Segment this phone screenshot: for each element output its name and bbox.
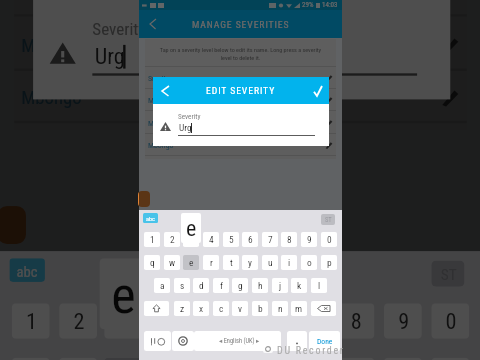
button[interactable]: 1 xyxy=(12,303,50,339)
button[interactable]: Major xyxy=(145,89,336,111)
button[interactable]: abc xyxy=(9,258,45,282)
staticText: 2 xyxy=(170,234,175,245)
button[interactable]: o xyxy=(301,255,317,270)
button[interactable]: t xyxy=(223,255,239,270)
staticText: s xyxy=(180,280,185,291)
button[interactable]: 9 xyxy=(301,232,317,247)
button[interactable]: a xyxy=(154,278,170,293)
button[interactable]: Major xyxy=(14,0,467,16)
staticText: Urg xyxy=(179,122,192,133)
button[interactable]: 4 xyxy=(203,232,219,247)
button[interactable]: Navigate up xyxy=(145,16,161,32)
staticText: Tap on a severity level below to edit it… xyxy=(154,46,327,61)
staticText: e xyxy=(186,216,197,242)
button[interactable]: r xyxy=(203,255,219,270)
button[interactable]: 3 xyxy=(183,232,199,247)
button[interactable]: y xyxy=(242,255,258,270)
staticText: 3 xyxy=(189,234,194,245)
button[interactable]: Mbongo xyxy=(145,134,336,156)
button[interactable]: Back xyxy=(157,82,174,99)
staticText: 8 xyxy=(351,308,363,334)
button[interactable]: x xyxy=(193,301,209,316)
button[interactable]: e xyxy=(104,358,142,360)
button[interactable]: 5 xyxy=(199,303,237,339)
staticText: 14:03 xyxy=(322,1,338,9)
button[interactable]: u xyxy=(262,255,278,270)
staticText: Small xyxy=(148,74,166,83)
button[interactable]: Save xyxy=(309,82,326,99)
button[interactable]: 0 xyxy=(321,232,337,247)
button[interactable]: w xyxy=(164,255,180,270)
button[interactable]: s xyxy=(174,278,190,293)
button[interactable]: Massive xyxy=(145,112,336,134)
button[interactable]: i xyxy=(281,255,297,270)
button[interactable]: Backspace xyxy=(311,301,336,316)
button[interactable]: p xyxy=(321,255,337,270)
button[interactable]: Add severity xyxy=(0,206,26,244)
staticText: x xyxy=(199,303,204,314)
button[interactable]: 2 xyxy=(164,232,180,247)
button[interactable]: q xyxy=(144,255,160,270)
button[interactable]: Clipboard xyxy=(321,214,335,225)
button[interactable]: 8 xyxy=(336,303,374,339)
staticText: Massive xyxy=(21,35,83,57)
button[interactable]: 1 xyxy=(144,232,160,247)
button[interactable]: d xyxy=(193,278,209,293)
button[interactable]: v xyxy=(232,301,248,316)
button[interactable]: Period xyxy=(287,331,307,351)
button[interactable]: z xyxy=(174,301,190,316)
button[interactable]: 3 xyxy=(104,303,142,339)
button[interactable]: 2 xyxy=(59,303,97,339)
staticText: y xyxy=(248,257,252,268)
button[interactable]: l xyxy=(311,278,327,293)
button[interactable]: 0 xyxy=(431,303,469,339)
button[interactable]: Massive xyxy=(14,19,467,71)
button[interactable]: 7 xyxy=(291,303,329,339)
button[interactable]: f xyxy=(213,278,229,293)
button[interactable]: Add severity xyxy=(138,191,150,207)
button[interactable]: abc xyxy=(143,213,158,223)
button[interactable]: g xyxy=(232,278,248,293)
staticText: v xyxy=(238,303,243,314)
button[interactable]: 6 xyxy=(244,303,282,339)
button[interactable]: Symbols xyxy=(144,331,171,351)
button[interactable]: Small xyxy=(145,67,336,89)
staticText: Major xyxy=(148,96,166,105)
button[interactable]: m xyxy=(291,301,307,316)
button[interactable]: e xyxy=(183,255,199,270)
staticText: e xyxy=(189,257,194,268)
button[interactable]: h xyxy=(252,278,268,293)
button[interactable]: 9 xyxy=(384,303,422,339)
staticText: c xyxy=(219,303,224,314)
button[interactable]: Shift xyxy=(144,301,169,316)
staticText: 4 xyxy=(209,234,214,245)
button[interactable]: j xyxy=(272,278,288,293)
staticText: i xyxy=(288,257,291,268)
staticText: p xyxy=(327,257,332,268)
button[interactable]: k xyxy=(291,278,307,293)
button[interactable]: Settings xyxy=(172,331,194,351)
button[interactable]: 7 xyxy=(262,232,278,247)
button[interactable]: i xyxy=(336,358,374,360)
button[interactable]: Mbongo xyxy=(14,71,467,123)
button[interactable]: Done xyxy=(309,331,340,351)
staticText: 7 xyxy=(268,234,273,245)
button[interactable]: b xyxy=(252,301,268,316)
button[interactable]: 8 xyxy=(281,232,297,247)
button[interactable]: 6 xyxy=(242,232,258,247)
button[interactable]: ◂ English (UK) ▸ xyxy=(194,331,281,351)
button[interactable]: n xyxy=(272,301,288,316)
button[interactable]: 4 xyxy=(152,303,189,339)
button[interactable]: 5 xyxy=(223,232,239,247)
staticText: w xyxy=(169,257,176,268)
button[interactable]: c xyxy=(213,301,229,316)
